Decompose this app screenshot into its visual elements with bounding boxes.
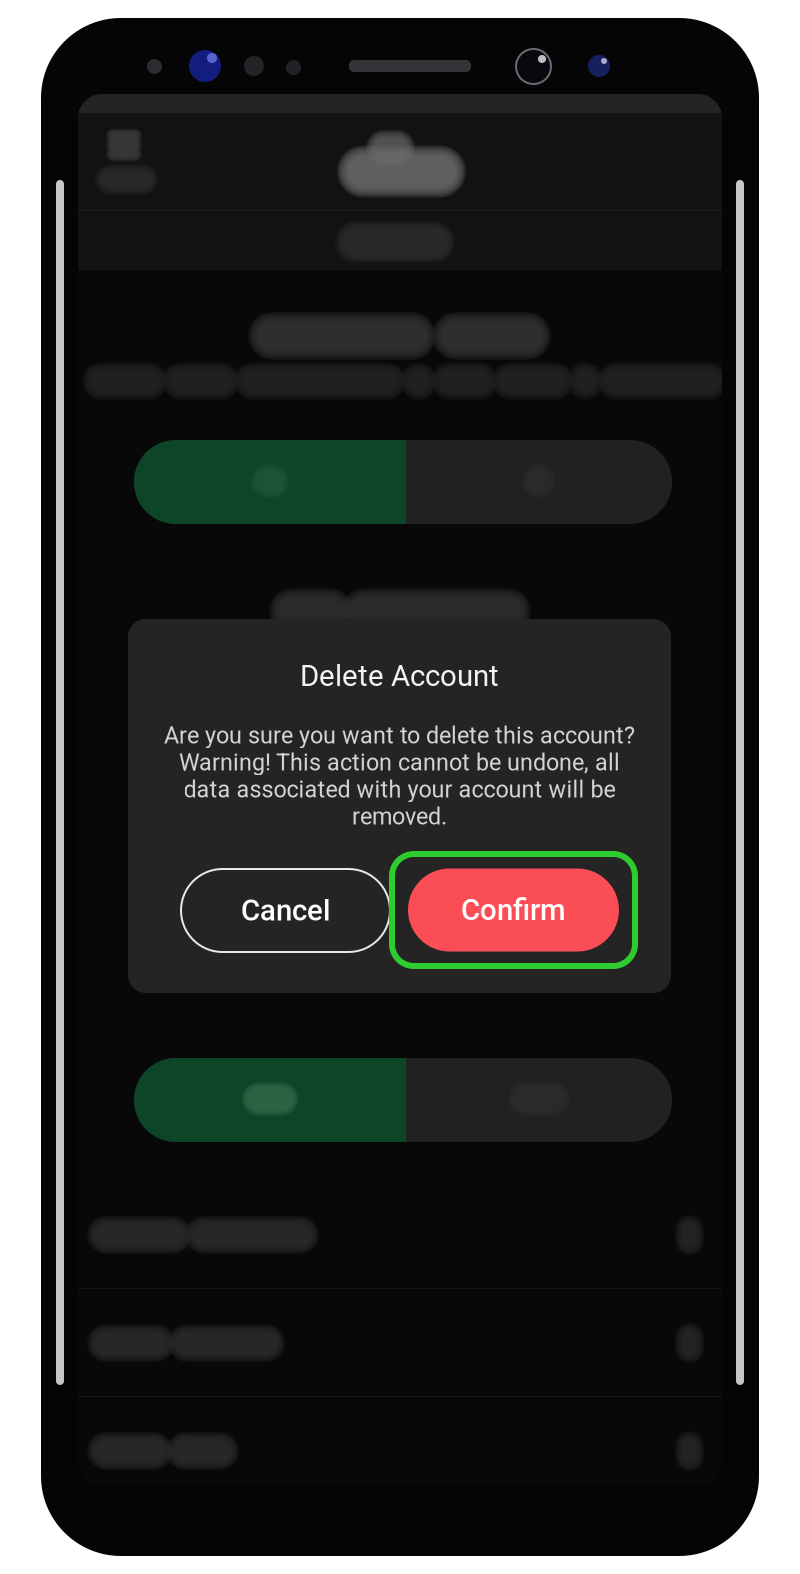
button[interactable]: Confirm	[392, 854, 635, 966]
staticText: Warning! This action cannot be undone, a…	[179, 749, 620, 776]
button[interactable]: Cancel	[181, 869, 390, 952]
staticText: removed.	[352, 803, 447, 830]
staticText: Delete Account	[300, 659, 499, 693]
staticText: data associated with your account will b…	[183, 776, 615, 803]
staticText: Confirm	[461, 893, 566, 927]
staticText: Are you sure you want to delete this acc…	[164, 722, 635, 749]
staticText: Cancel	[241, 893, 330, 928]
